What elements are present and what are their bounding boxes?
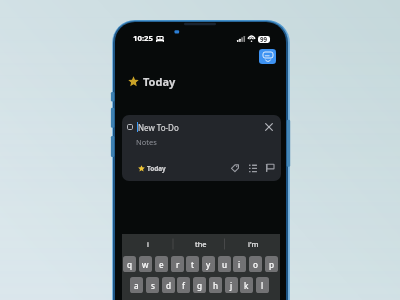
button[interactable]: Flag — [266, 164, 274, 172]
button[interactable]: j — [225, 277, 238, 293]
staticText: a — [134, 280, 139, 291]
staticText: l — [261, 280, 264, 291]
button[interactable]: d — [162, 277, 175, 293]
button[interactable]: r — [171, 256, 184, 272]
staticText: Today — [143, 74, 176, 89]
button[interactable]: l — [256, 277, 269, 293]
button[interactable]: q — [123, 256, 136, 272]
button[interactable]: List — [249, 164, 257, 172]
staticText: Today — [147, 164, 166, 173]
staticText: j — [230, 280, 233, 291]
button[interactable]: a — [130, 277, 143, 293]
staticText: p — [269, 259, 275, 270]
button[interactable]: u — [218, 256, 231, 272]
staticText: o — [253, 259, 258, 270]
staticText: s — [151, 280, 155, 291]
staticText: q — [127, 259, 133, 270]
staticText: y — [206, 259, 211, 270]
staticText: 99 — [260, 35, 268, 43]
button[interactable]: Tag — [231, 164, 239, 172]
staticText: d — [166, 280, 172, 291]
button[interactable]: the — [174, 234, 227, 254]
staticText: New To-Do — [138, 122, 179, 133]
button[interactable]: g — [193, 277, 206, 293]
button[interactable]: s — [146, 277, 159, 293]
staticText: i — [147, 239, 149, 249]
button[interactable]: i — [122, 234, 174, 254]
button[interactable]: y — [202, 256, 215, 272]
staticText: r — [176, 259, 180, 270]
button[interactable]: f — [177, 277, 190, 293]
button[interactable]: w — [139, 256, 152, 272]
button[interactable]: i'm — [227, 234, 280, 254]
staticText: u — [222, 259, 228, 270]
button[interactable]: p — [265, 256, 278, 272]
staticText: Notes — [136, 137, 157, 147]
button[interactable]: New To-Do — [122, 115, 281, 181]
staticText: 10:25 — [133, 33, 154, 44]
button[interactable]: Close — [265, 123, 273, 131]
button[interactable]: New reminder — [259, 49, 276, 64]
button[interactable]: i — [233, 256, 246, 272]
staticText: k — [244, 280, 249, 291]
staticText: i'm — [248, 239, 259, 249]
staticText: t — [191, 259, 194, 270]
button[interactable]: h — [209, 277, 222, 293]
button[interactable]: k — [240, 277, 253, 293]
staticText: g — [197, 280, 203, 291]
staticText: h — [213, 280, 219, 291]
button[interactable]: o — [249, 256, 262, 272]
button[interactable]: t — [186, 256, 199, 272]
staticText: e — [159, 259, 164, 270]
staticText: f — [182, 280, 185, 291]
staticText: w — [142, 259, 149, 270]
button[interactable]: e — [155, 256, 168, 272]
staticText: i — [238, 259, 241, 270]
staticText: the — [195, 239, 207, 249]
